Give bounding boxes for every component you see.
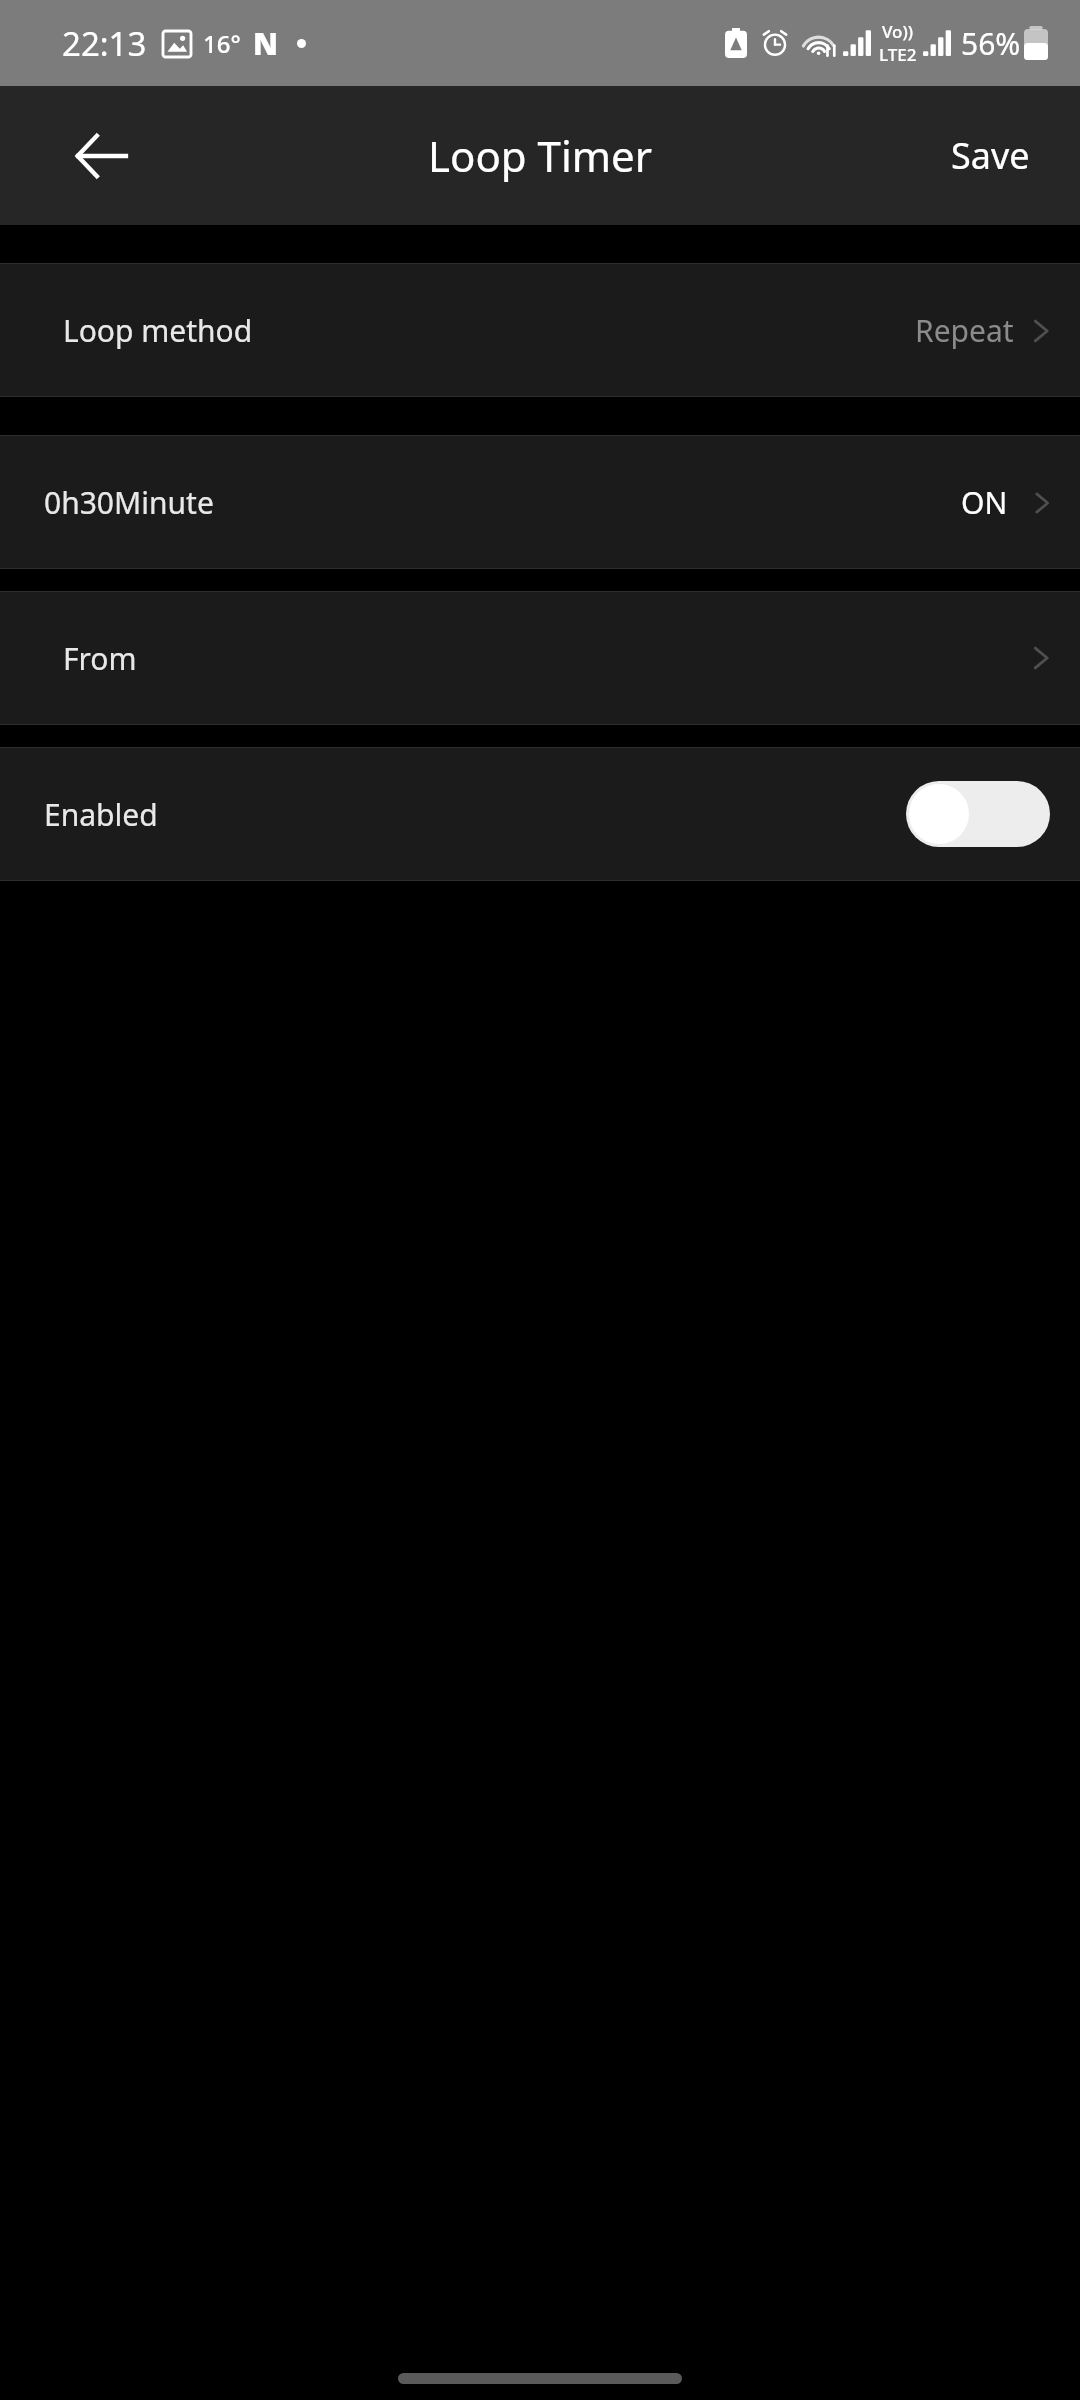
staticText: 16° [203,27,241,60]
staticText: Loop Timer [428,127,653,184]
staticText: From [63,638,137,679]
staticText: 56% [961,23,1021,64]
button[interactable]: From [0,591,1080,725]
button[interactable]: Enabled toggle [906,779,1050,849]
staticText: 22:13 [62,21,147,66]
button[interactable]: Back [56,111,146,201]
button[interactable]: Loop method [0,263,1080,397]
button[interactable]: Enabled [0,747,1080,881]
staticText: ON [961,482,1008,523]
staticText: Vo)) [882,20,914,43]
staticText: Save [951,131,1030,180]
button[interactable]: 0h30Minute [0,435,1080,569]
staticText: LTE2 [879,43,917,66]
staticText: Enabled [44,794,158,835]
staticText: 0h30Minute [44,482,214,523]
staticText: N [253,23,279,64]
staticText: Loop method [63,310,253,351]
staticText: Repeat [915,310,1014,351]
button[interactable]: Save [937,117,1044,194]
